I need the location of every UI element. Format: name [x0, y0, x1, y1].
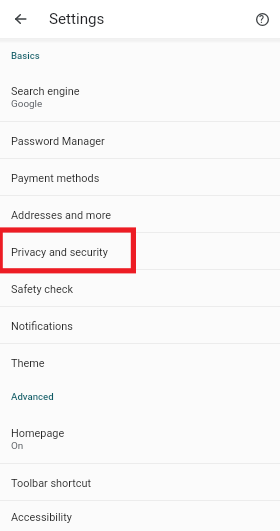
button[interactable]: Help and feedback — [247, 4, 277, 34]
staticText: Safety check — [11, 283, 73, 296]
staticText: Search engine — [11, 85, 80, 98]
button[interactable]: Homepage — [0, 412, 280, 464]
staticText: ? — [259, 13, 265, 25]
button[interactable]: Privacy and security — [0, 233, 280, 270]
button[interactable]: Theme — [0, 344, 280, 381]
button[interactable]: Password Manager — [0, 122, 280, 159]
button[interactable]: Search engine — [0, 71, 280, 122]
button[interactable]: Payment methods — [0, 159, 280, 196]
staticText: Google — [11, 98, 43, 110]
staticText: Accessibility — [11, 511, 72, 524]
staticText: Basics — [11, 50, 40, 61]
staticText: Password Manager — [11, 135, 105, 148]
staticText: Advanced — [11, 391, 54, 402]
staticText: Theme — [11, 357, 45, 370]
button[interactable]: Safety check — [0, 270, 280, 307]
staticText: Notifications — [11, 320, 73, 333]
button[interactable]: Addresses and more — [0, 196, 280, 233]
staticText: Toolbar shortcut — [11, 477, 92, 490]
staticText: Privacy and security — [11, 246, 108, 259]
staticText: Settings — [49, 10, 105, 28]
button[interactable]: Toolbar shortcut — [0, 464, 280, 501]
button[interactable]: Navigate up — [4, 3, 36, 35]
button[interactable]: Accessibility — [0, 501, 280, 531]
staticText: Addresses and more — [11, 209, 111, 222]
staticText: On — [11, 440, 24, 452]
staticText: Homepage — [11, 427, 65, 440]
button[interactable]: Notifications — [0, 307, 280, 344]
staticText: Payment methods — [11, 172, 100, 185]
